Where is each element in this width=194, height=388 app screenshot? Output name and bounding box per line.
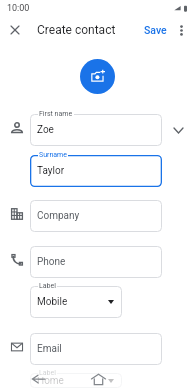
button[interactable]: Zoe (30, 114, 162, 146)
staticText: Taylor (37, 165, 65, 177)
staticText: Mobile (37, 296, 68, 308)
staticText: 10:00 (7, 3, 30, 14)
staticText: First name (39, 110, 73, 118)
button[interactable]: More options (171, 20, 191, 40)
staticText: Zoe (37, 124, 54, 136)
staticText: Email (37, 343, 62, 355)
button[interactable]: Close (3, 18, 27, 42)
staticText: Home (37, 375, 64, 387)
staticText: Phone (37, 256, 66, 268)
staticText: Create contact (37, 23, 116, 37)
button[interactable]: Taylor (30, 155, 162, 187)
button[interactable]: Save (140, 21, 171, 39)
button[interactable]: Mobile (30, 286, 122, 318)
button[interactable]: Expand name fields (162, 114, 194, 146)
button[interactable]: Company (30, 200, 162, 232)
button[interactable]: Home (88, 369, 108, 388)
staticText: Label (39, 282, 56, 290)
staticText: Label (39, 369, 56, 377)
staticText: Surname (39, 151, 67, 159)
staticText: Save (144, 24, 167, 36)
button[interactable]: Email (30, 333, 162, 365)
button[interactable]: Add photo (80, 59, 115, 94)
button[interactable]: Home (30, 373, 122, 388)
staticText: Company (37, 210, 80, 222)
button[interactable]: Phone (30, 246, 162, 278)
button[interactable]: Back (28, 369, 48, 388)
